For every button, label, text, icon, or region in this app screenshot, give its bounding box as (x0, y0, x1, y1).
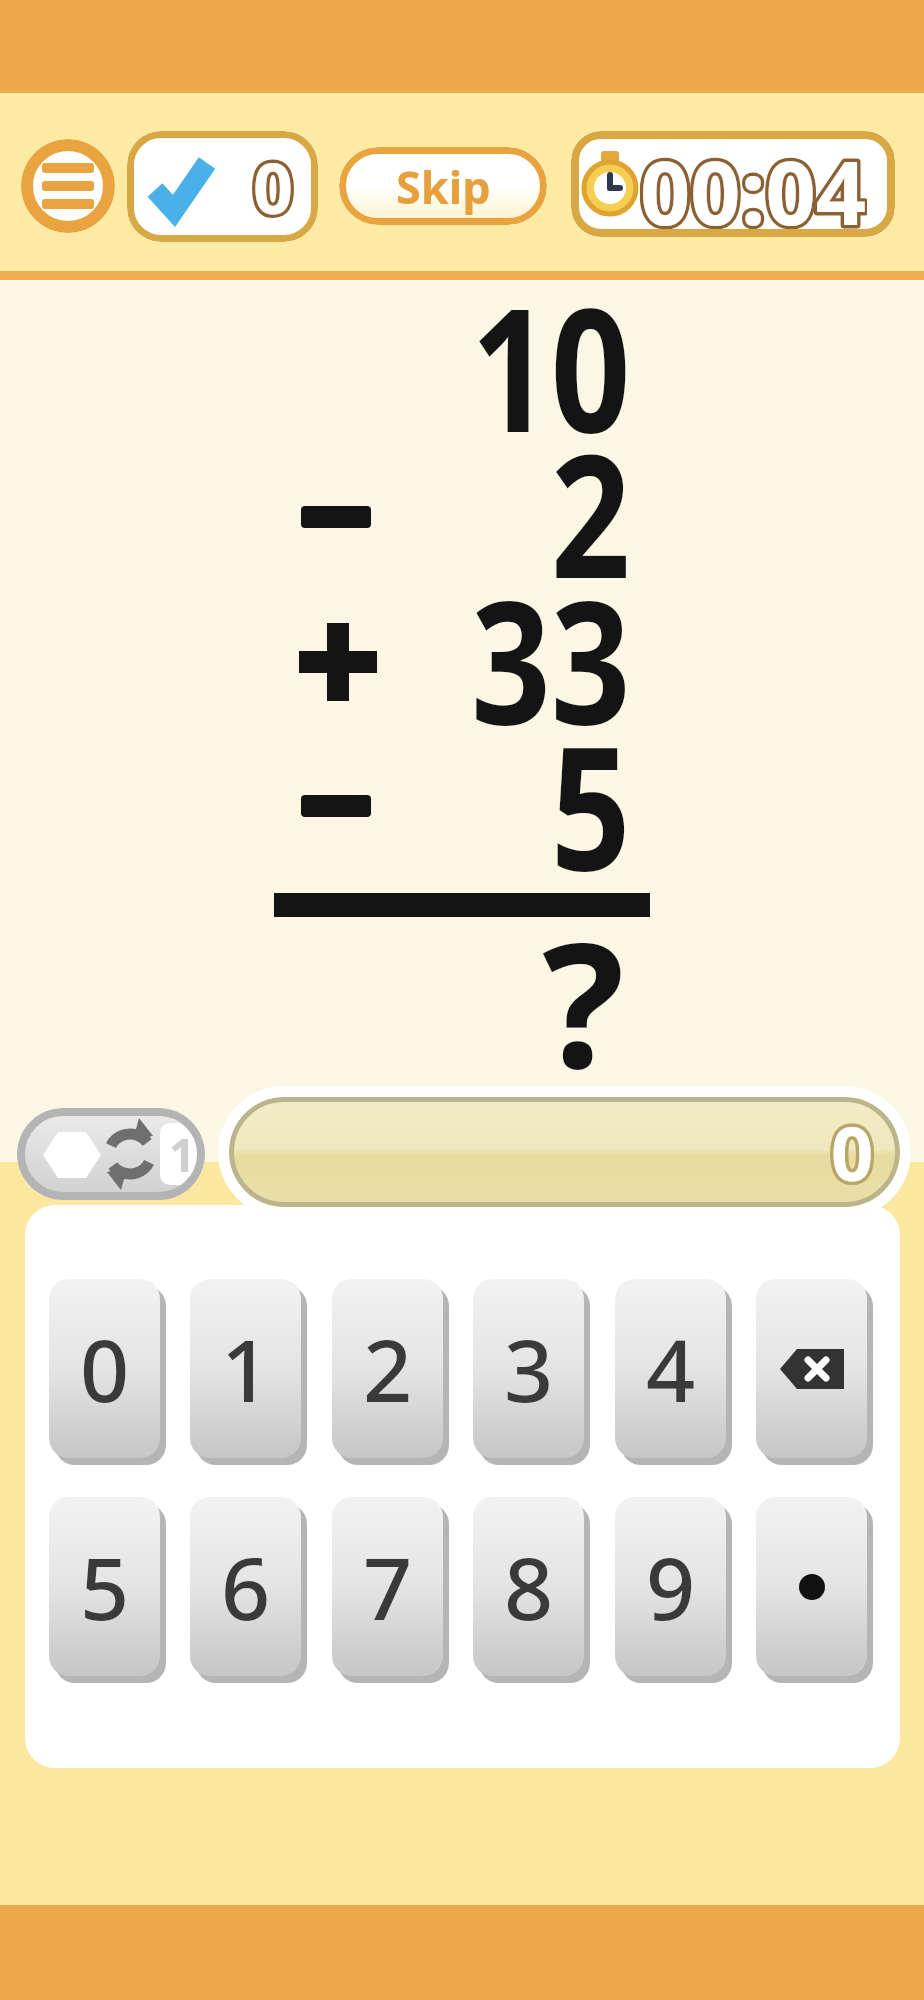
staticText: 2 (363, 1310, 413, 1427)
staticText: ? (542, 884, 625, 1094)
button[interactable] (756, 1279, 867, 1458)
staticText: 1 (221, 1310, 271, 1427)
staticText: 0 (253, 139, 294, 234)
staticText: 00:04 (640, 131, 867, 237)
staticText: 33 (471, 542, 631, 752)
button[interactable]: 0 (218, 1086, 911, 1218)
button[interactable]: 0 (49, 1279, 160, 1458)
staticText: 0 (80, 1310, 130, 1427)
staticText: 9 (646, 1528, 696, 1645)
button[interactable] (21, 139, 115, 233)
staticText: 5 (551, 688, 631, 898)
staticText: 0 (253, 139, 294, 234)
staticText: 0 (831, 1102, 874, 1203)
staticText: 8 (504, 1528, 554, 1645)
button[interactable]: 4 (615, 1279, 726, 1458)
button[interactable]: 8 (473, 1497, 584, 1676)
button[interactable] (756, 1497, 867, 1676)
staticText: 00:04 (640, 131, 867, 237)
button[interactable]: 0 (127, 131, 318, 242)
button[interactable]: 1 (190, 1279, 301, 1458)
button[interactable]: 00:04 (571, 131, 895, 237)
staticText: 4 (646, 1310, 696, 1427)
button[interactable]: 6 (190, 1497, 301, 1676)
staticText: Skip (396, 156, 491, 217)
button[interactable]: 7 (332, 1497, 443, 1676)
button[interactable]: 1 (17, 1108, 205, 1200)
button[interactable]: 3 (473, 1279, 584, 1458)
staticText: 5 (80, 1528, 130, 1645)
staticText: 1 (169, 1123, 196, 1185)
button[interactable]: 5 (49, 1497, 160, 1676)
button[interactable]: 9 (615, 1497, 726, 1676)
staticText: 7 (363, 1528, 413, 1645)
button[interactable]: 2 (332, 1279, 443, 1458)
staticText: 10 (471, 250, 631, 460)
staticText: 3 (504, 1310, 554, 1427)
staticText: 0 (831, 1102, 874, 1203)
staticText: 6 (221, 1528, 271, 1645)
staticText: 2 (551, 396, 631, 606)
button[interactable]: Skip (339, 147, 547, 225)
